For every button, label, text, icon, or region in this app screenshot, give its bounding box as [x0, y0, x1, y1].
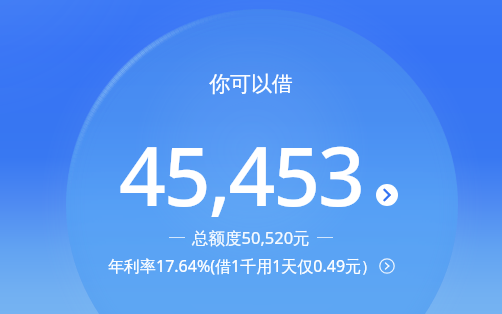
- staticText: 年利率17.64%(借1千用1天仅0.49元）: [108, 255, 378, 277]
- staticText: 总额度50,520元: [192, 226, 310, 249]
- other: 利率说明: [379, 258, 395, 274]
- button[interactable]: 查看可借额度详情: [376, 184, 398, 206]
- staticText: 45,453: [119, 118, 363, 230]
- staticText: 你可以借: [209, 71, 293, 97]
- button[interactable]: 年利率17.64%(借1千用1天仅0.49元）: [108, 255, 395, 277]
